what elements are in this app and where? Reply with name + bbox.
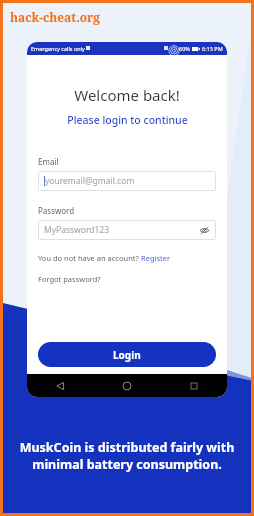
staticText: Email (38, 156, 59, 167)
staticText: Emergency calls only (31, 45, 85, 52)
button[interactable]: Toggle password visibility (199, 225, 210, 236)
button[interactable]: Recents (187, 379, 201, 393)
staticText: 60% (179, 45, 190, 52)
button[interactable]: MyPassword123 (38, 220, 216, 240)
staticText: Login (113, 348, 141, 362)
staticText: hack-cheat.org (10, 9, 101, 25)
button[interactable]: youremail@gmail.com (38, 171, 216, 191)
staticText: You do not have an account? (38, 253, 141, 263)
staticText: Register (141, 253, 171, 263)
staticText: MyPassword123 (44, 224, 110, 236)
button[interactable]: Login (38, 342, 216, 367)
button[interactable]: Home (120, 379, 134, 393)
staticText: youremail@gmail.com (45, 175, 135, 187)
staticText: Welcome back! (74, 85, 180, 105)
button[interactable]: Back (53, 379, 67, 393)
staticText: 6:15 PM (202, 45, 223, 52)
staticText: Forgot password? (38, 274, 101, 284)
staticText: MuskCoin is distributed fairly with mini… (3, 439, 251, 472)
staticText: Password (38, 205, 75, 216)
button[interactable]: Forgot password? (38, 274, 216, 284)
staticText: Please login to continue (67, 113, 188, 127)
button[interactable]: Register (141, 253, 171, 263)
